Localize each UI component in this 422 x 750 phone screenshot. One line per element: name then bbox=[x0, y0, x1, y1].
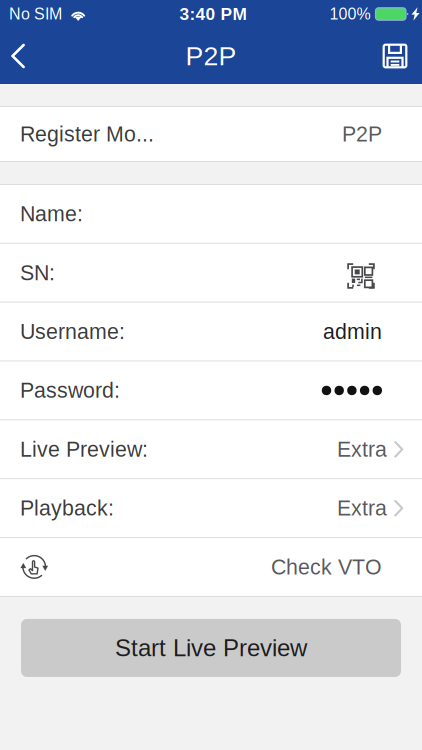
button[interactable]: Check VTO bbox=[0, 538, 422, 596]
staticText: Start Live Preview bbox=[115, 634, 307, 661]
button[interactable]: Live Preview: bbox=[0, 420, 422, 478]
staticText: Playback: bbox=[20, 496, 114, 520]
staticText: Extra bbox=[337, 496, 387, 520]
staticText: Live Preview: bbox=[20, 437, 148, 461]
staticText: Register Mo... bbox=[20, 122, 154, 146]
button[interactable]: Scan QR code bbox=[339, 254, 383, 298]
staticText: Name: bbox=[20, 202, 83, 226]
staticText: admin bbox=[323, 320, 382, 343]
button[interactable]: Register Mo... bbox=[0, 107, 422, 161]
button[interactable]: Save bbox=[373, 32, 417, 80]
staticText: P2P bbox=[185, 41, 236, 71]
staticText: 3:40 PM bbox=[179, 4, 246, 24]
staticText: SN: bbox=[20, 261, 55, 285]
button[interactable]: Start Live Preview bbox=[21, 619, 401, 677]
staticText: Password: bbox=[20, 379, 120, 402]
staticText: 100% bbox=[329, 5, 370, 23]
staticText: Check VTO bbox=[271, 555, 382, 579]
staticText: No SIM bbox=[9, 5, 62, 23]
button[interactable]: Playback: bbox=[0, 479, 422, 537]
button[interactable]: Back bbox=[0, 32, 36, 80]
staticText: P2P bbox=[342, 122, 382, 146]
staticText: Extra bbox=[337, 437, 387, 461]
staticText: Username: bbox=[20, 320, 125, 343]
